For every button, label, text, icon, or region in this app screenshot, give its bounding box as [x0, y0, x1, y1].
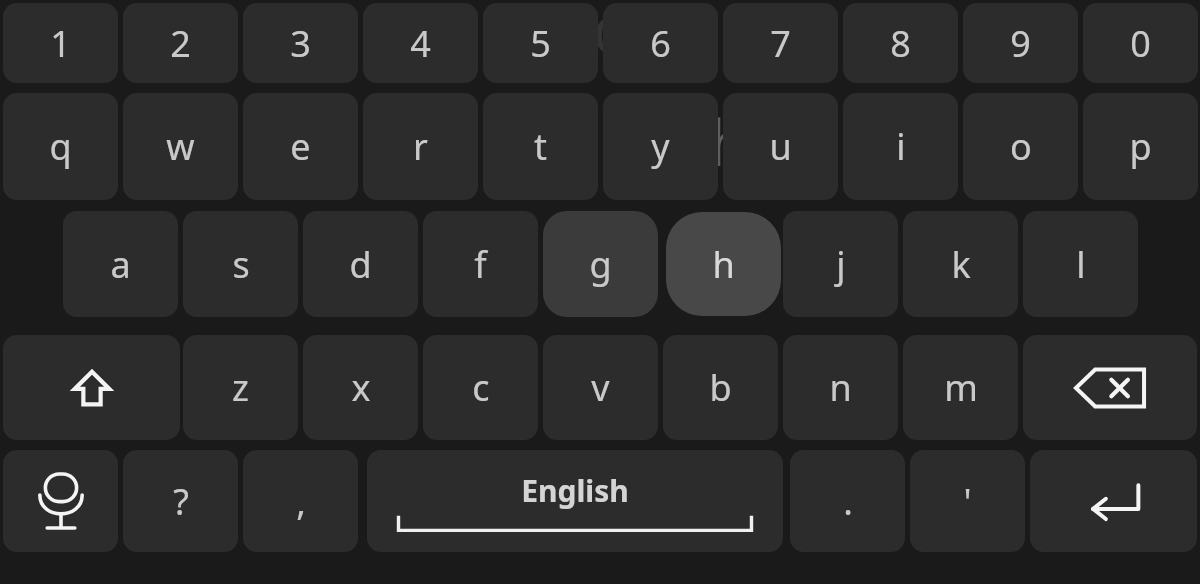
button[interactable]: 1: [3, 3, 118, 83]
staticText: i: [896, 122, 906, 171]
staticText: ,: [296, 477, 306, 526]
button[interactable]: Enter: [1030, 450, 1197, 552]
staticText: 5: [530, 19, 551, 68]
staticText: a: [110, 240, 131, 289]
button[interactable]: y: [603, 93, 718, 200]
button[interactable]: i: [843, 93, 958, 200]
button[interactable]: 5: [483, 3, 598, 83]
button[interactable]: l: [1023, 211, 1138, 317]
button[interactable]: j: [783, 211, 898, 317]
staticText: 4: [410, 19, 431, 68]
button[interactable]: b: [663, 335, 778, 440]
staticText: w: [166, 122, 195, 171]
staticText: t: [534, 122, 547, 171]
staticText: n: [829, 363, 852, 412]
button[interactable]: r: [363, 93, 478, 200]
button[interactable]: 9: [963, 3, 1078, 83]
button[interactable]: q: [3, 93, 118, 200]
button[interactable]: ?: [123, 450, 238, 552]
button[interactable]: Space: [367, 450, 783, 552]
staticText: e: [290, 122, 311, 171]
staticText: q: [49, 122, 72, 171]
button[interactable]: Voice input: [3, 450, 118, 552]
button[interactable]: c: [423, 335, 538, 440]
button[interactable]: ': [910, 450, 1025, 552]
staticText: r: [413, 122, 428, 171]
staticText: 3: [290, 19, 311, 68]
button[interactable]: g: [543, 211, 658, 317]
staticText: h: [709, 98, 749, 182]
staticText: c: [472, 363, 490, 412]
button[interactable]: t: [483, 93, 598, 200]
button[interactable]: Backspace: [1023, 335, 1197, 440]
staticText: b: [709, 363, 732, 412]
staticText: v: [591, 363, 610, 412]
button[interactable]: e: [243, 93, 358, 200]
staticText: x: [351, 363, 371, 412]
staticText: 2: [170, 19, 191, 68]
staticText: English: [521, 470, 629, 511]
staticText: l: [1076, 240, 1086, 289]
staticText: h: [712, 240, 735, 289]
button[interactable]: w: [123, 93, 238, 200]
button[interactable]: d: [303, 211, 418, 317]
button[interactable]: m: [903, 335, 1018, 440]
staticText: y: [651, 122, 670, 171]
button[interactable]: k: [903, 211, 1018, 317]
staticText: g: [589, 240, 612, 289]
staticText: k: [951, 240, 971, 289]
button[interactable]: f: [423, 211, 538, 317]
button[interactable]: o: [963, 93, 1078, 200]
button[interactable]: n: [783, 335, 898, 440]
staticText: j: [836, 240, 846, 289]
staticText: 8: [890, 19, 911, 68]
button[interactable]: x: [303, 335, 418, 440]
button[interactable]: ,: [243, 450, 358, 552]
staticText: p: [1129, 122, 1152, 171]
button[interactable]: 4: [363, 3, 478, 83]
staticText: d: [349, 240, 372, 289]
button[interactable]: .: [790, 450, 905, 552]
button[interactable]: v: [543, 335, 658, 440]
staticText: 7: [770, 19, 791, 68]
staticText: 0: [1130, 19, 1151, 68]
staticText: s: [232, 240, 250, 289]
button[interactable]: 7: [723, 3, 838, 83]
staticText: g: [592, 0, 633, 58]
staticText: z: [232, 363, 249, 412]
staticText: f: [474, 240, 487, 289]
staticText: 6: [650, 19, 671, 68]
button[interactable]: 2: [123, 3, 238, 83]
staticText: m: [944, 363, 978, 412]
button[interactable]: h: [666, 212, 781, 316]
button[interactable]: 0: [1083, 3, 1198, 83]
staticText: 9: [1010, 19, 1031, 68]
button[interactable]: a: [63, 211, 178, 317]
staticText: 1: [50, 19, 71, 68]
staticText: u: [769, 122, 792, 171]
staticText: o: [1010, 122, 1032, 171]
button[interactable]: 8: [843, 3, 958, 83]
staticText: .: [843, 477, 853, 526]
button[interactable]: 6: [603, 3, 718, 83]
staticText: ': [963, 477, 972, 526]
button[interactable]: u: [723, 93, 838, 200]
button[interactable]: Shift: [3, 335, 180, 440]
staticText: ?: [173, 477, 189, 526]
button[interactable]: s: [183, 211, 298, 317]
button[interactable]: z: [183, 335, 298, 440]
button[interactable]: 3: [243, 3, 358, 83]
button[interactable]: p: [1083, 93, 1198, 200]
